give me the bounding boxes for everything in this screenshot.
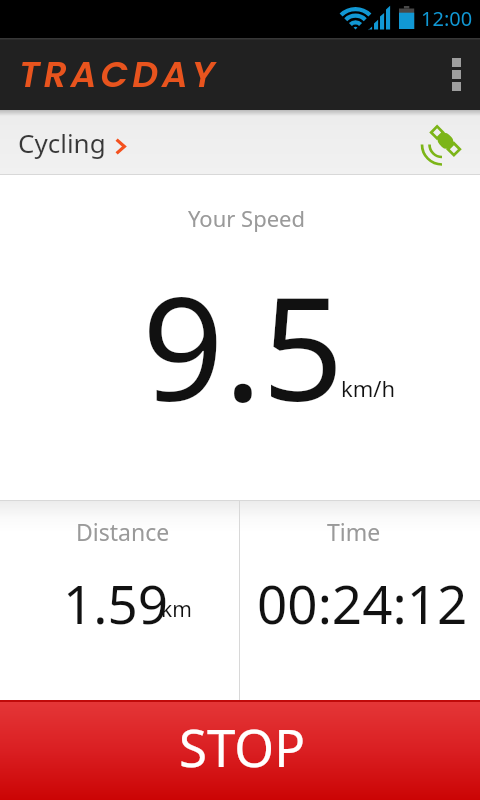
staticText: Distance bbox=[76, 516, 170, 547]
staticText: STOP bbox=[179, 712, 306, 781]
staticText: 12:00 bbox=[421, 5, 473, 32]
staticText: Time bbox=[327, 516, 381, 547]
staticText: TRACDAY bbox=[19, 49, 219, 99]
staticText: km bbox=[161, 595, 192, 624]
other: GPS status bbox=[418, 118, 468, 168]
staticText: Cycling bbox=[18, 125, 106, 160]
button[interactable]: Cycling bbox=[0, 110, 480, 175]
button[interactable]: Distance bbox=[0, 500, 239, 700]
staticText: 1.59 bbox=[63, 567, 169, 639]
staticText: 9.5 bbox=[142, 248, 344, 443]
staticText: km/h bbox=[341, 373, 396, 403]
staticText: Your Speed bbox=[188, 203, 306, 233]
staticText: 00:24:12 bbox=[257, 567, 468, 639]
button[interactable]: More options bbox=[432, 38, 480, 110]
button[interactable]: Time bbox=[240, 500, 480, 700]
button[interactable]: STOP bbox=[0, 700, 480, 800]
